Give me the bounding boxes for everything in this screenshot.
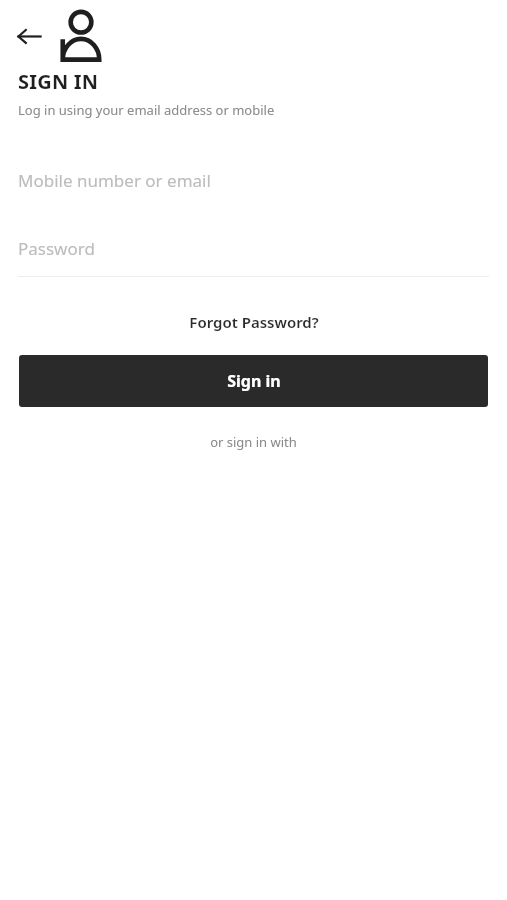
button[interactable]: Password <box>18 229 489 267</box>
button[interactable]: Sign in <box>19 355 488 407</box>
staticText: SIGN IN <box>18 68 99 95</box>
staticText: or sign in with <box>210 433 297 451</box>
button[interactable]: Forgot Password? <box>0 309 507 335</box>
button[interactable]: Account <box>58 8 104 64</box>
staticText: Password <box>18 237 95 260</box>
button[interactable]: Mobile number or email <box>18 161 489 199</box>
staticText: Mobile number or email <box>18 169 211 192</box>
staticText: Log in using your email address or mobil… <box>18 101 275 119</box>
button[interactable]: Back <box>18 8 48 64</box>
staticText: Sign in <box>227 370 281 392</box>
staticText: Forgot Password? <box>189 312 319 332</box>
